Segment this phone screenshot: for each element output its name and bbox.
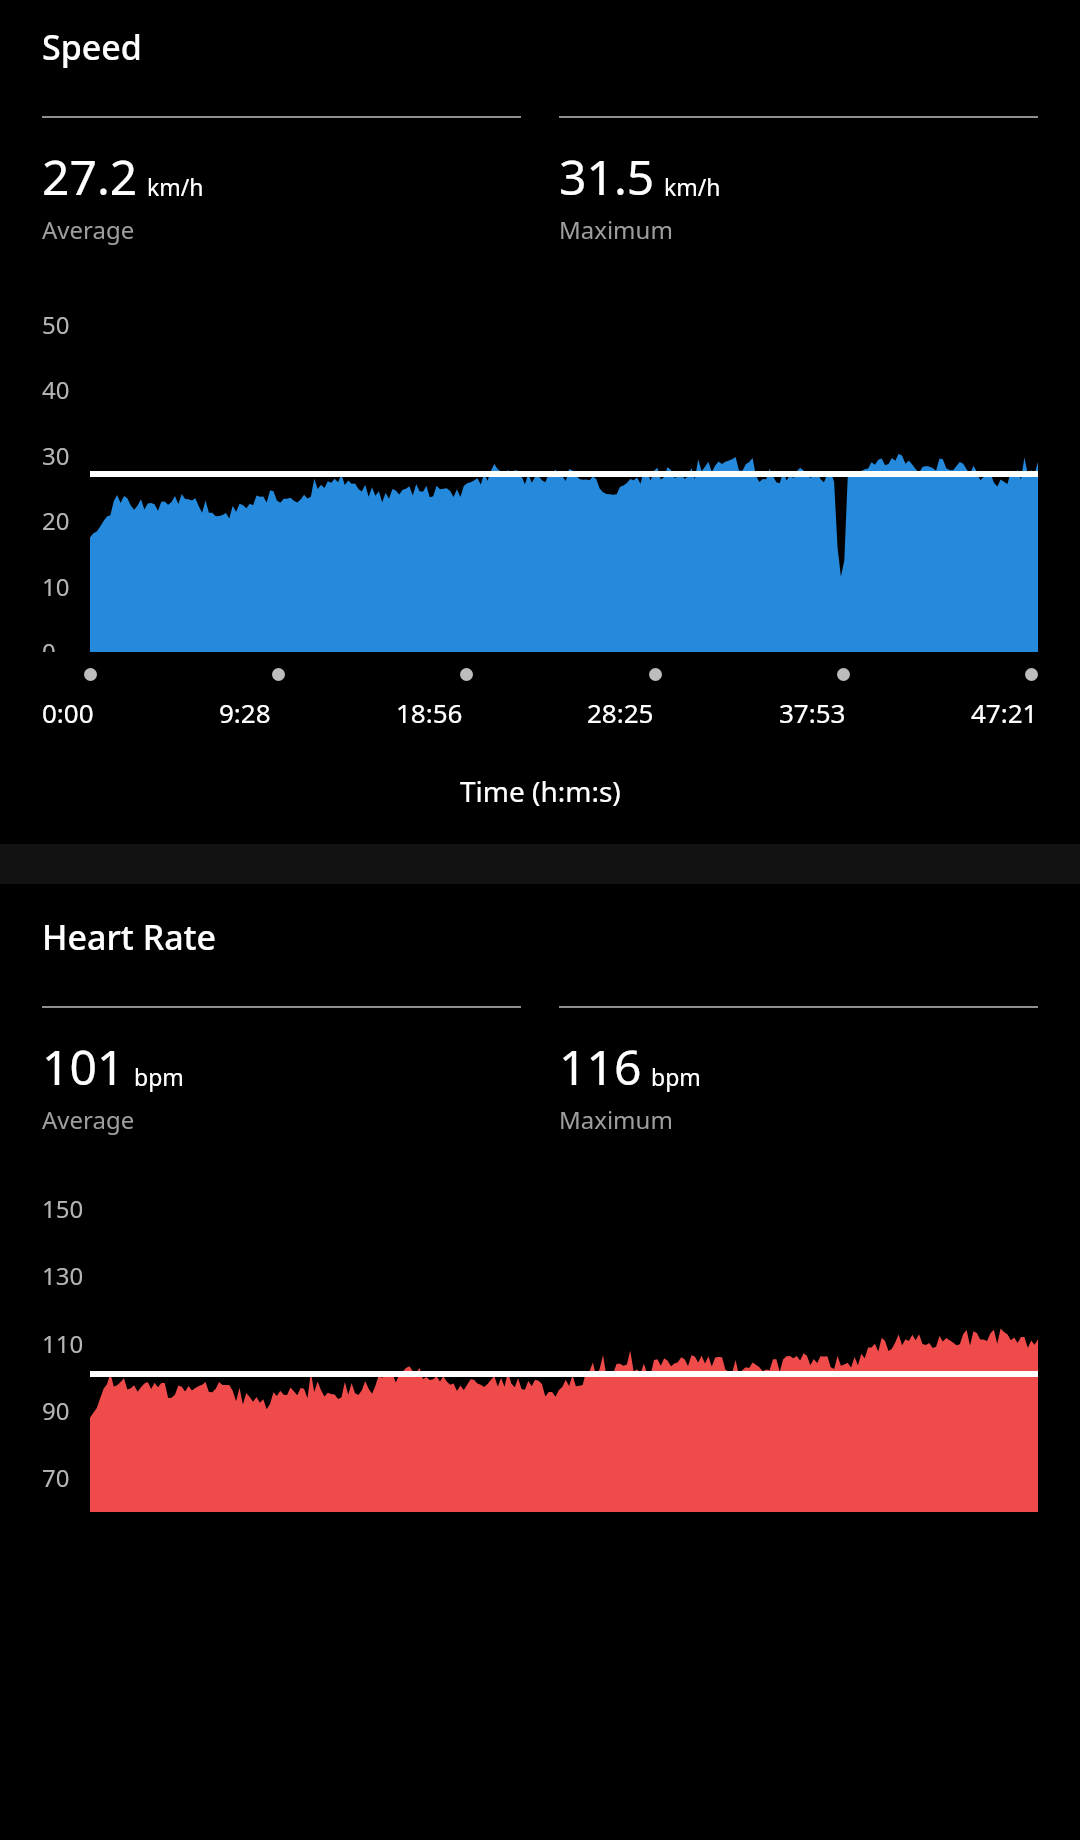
- staticText: 90: [42, 1394, 70, 1427]
- staticText: bpm: [651, 1061, 701, 1092]
- staticText: 31.5: [559, 144, 655, 209]
- button[interactable]: 101: [42, 1006, 521, 1136]
- button[interactable]: Speed: [0, 0, 1080, 844]
- staticText: 27.2: [42, 144, 138, 209]
- staticText: 30: [42, 439, 70, 472]
- staticText: 10: [42, 570, 70, 603]
- staticText: Time (h:m:s): [460, 772, 621, 810]
- staticText: 40: [42, 373, 70, 406]
- staticText: 47:21: [971, 695, 1038, 730]
- staticText: 18:56: [396, 695, 463, 730]
- button[interactable]: 27.2: [42, 116, 521, 246]
- staticText: Maximum: [559, 1103, 673, 1136]
- staticText: Heart Rate: [42, 914, 217, 960]
- staticText: 37:53: [779, 695, 846, 730]
- staticText: 116: [559, 1034, 642, 1099]
- staticText: Maximum: [559, 213, 673, 246]
- staticText: Speed: [42, 24, 142, 70]
- button[interactable]: 116: [559, 1006, 1038, 1136]
- staticText: 101: [42, 1034, 125, 1099]
- staticText: 50: [42, 308, 70, 341]
- staticText: 9:28: [219, 695, 271, 730]
- staticText: bpm: [134, 1061, 184, 1092]
- button[interactable]: 31.5: [559, 116, 1038, 246]
- staticText: 150: [42, 1192, 84, 1225]
- staticText: 0:00: [42, 695, 94, 730]
- staticText: 28:25: [587, 695, 654, 730]
- staticText: km/h: [147, 171, 204, 202]
- staticText: km/h: [664, 171, 721, 202]
- staticText: 110: [42, 1327, 84, 1360]
- button[interactable]: Heart Rate: [0, 884, 1080, 1512]
- staticText: 20: [42, 504, 70, 537]
- staticText: Average: [42, 213, 135, 246]
- staticText: 130: [42, 1259, 84, 1292]
- staticText: Average: [42, 1103, 135, 1136]
- staticText: 70: [42, 1461, 70, 1494]
- staticText: 0: [42, 635, 56, 652]
